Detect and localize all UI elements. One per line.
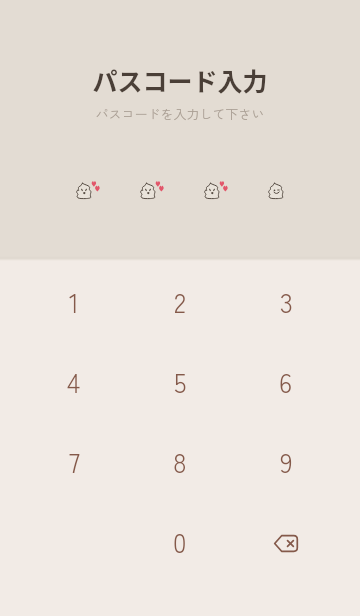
staticText: 6 (279, 362, 293, 400)
button[interactable]: 5 (127, 341, 233, 421)
staticText: パスコード入力 (92, 62, 268, 98)
staticText: 5 (174, 362, 187, 400)
button[interactable]: 3 (233, 261, 339, 341)
staticText: 4 (67, 362, 81, 400)
button[interactable]: 6 (233, 341, 339, 421)
staticText: 8 (173, 442, 187, 480)
button[interactable]: Delete (233, 501, 339, 581)
button[interactable]: 8 (127, 421, 233, 501)
staticText: パスコードを入力して下さい (95, 104, 265, 123)
staticText: 7 (69, 442, 80, 480)
button[interactable]: 4 (21, 341, 127, 421)
staticText: 9 (280, 442, 293, 480)
staticText: 3 (280, 282, 293, 320)
button[interactable]: 7 (21, 421, 127, 501)
staticText: 0 (173, 522, 187, 560)
staticText: 2 (174, 282, 186, 320)
button[interactable]: 2 (127, 261, 233, 341)
button[interactable]: 1 (21, 261, 127, 341)
button[interactable]: 9 (233, 421, 339, 501)
button[interactable]: 0 (127, 501, 233, 581)
staticText: 1 (69, 282, 80, 320)
